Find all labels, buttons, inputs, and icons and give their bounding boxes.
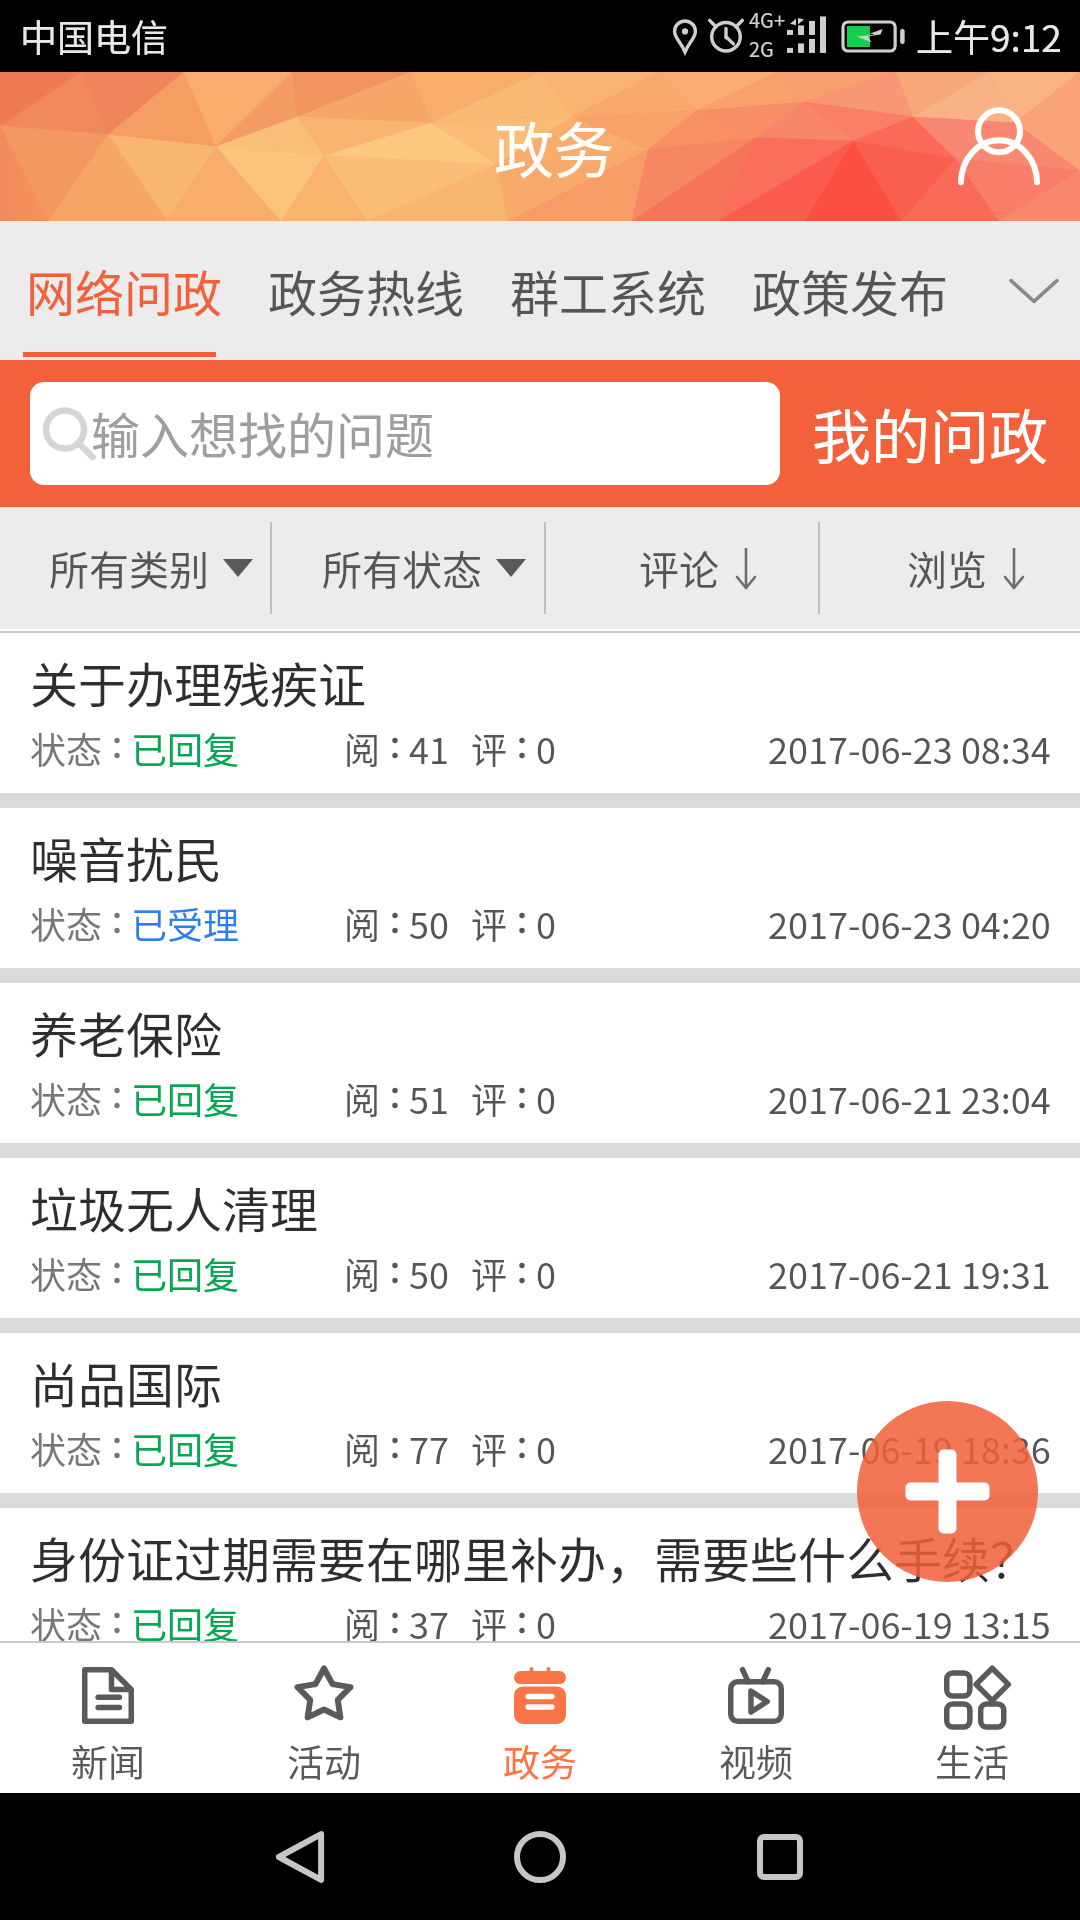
staticText: 状态 [30,1072,103,1124]
button[interactable]: 养老保险 [0,983,1080,1143]
staticText: 身份证过期需要在哪里补办，需要些什么手续？ [30,1522,1039,1592]
staticText: 2017-06-23 04:20 [768,897,1051,949]
staticText: 政策发布 [752,255,949,326]
staticText: 评 [471,1422,508,1474]
staticText: 状态 [30,1422,103,1474]
staticText: 网络问政 [26,255,223,326]
staticText: 阅 [344,1247,381,1299]
staticText: 37 [409,1597,449,1649]
staticText: 浏览 [907,539,987,597]
button[interactable]: 政务热线 [245,221,487,360]
button[interactable]: 活动 [216,1643,432,1793]
button[interactable]: 输入想找的问题 [30,382,780,485]
staticText: 生活 [935,1734,1009,1788]
staticText: 2017-06-19 18:36 [768,1422,1051,1474]
staticText: 阅 [344,1597,381,1649]
staticText: 已回复 [131,1422,240,1474]
staticText: 已回复 [131,1072,240,1124]
button[interactable]: 身份证过期需要在哪里补办，需要些什么手续？ [0,1508,1080,1641]
staticText: 垃圾无人清理 [30,1172,319,1242]
staticText: 评 [471,1597,508,1649]
button[interactable]: 尚品国际 [0,1333,1080,1493]
staticText: 2017-06-23 08:34 [768,722,1051,774]
staticText: 已回复 [131,722,240,774]
staticText: 2017-06-21 23:04 [768,1072,1051,1124]
staticText: 阅 [344,1422,381,1474]
staticText: 我的问政 [812,391,1049,476]
button[interactable]: 政务 [432,1643,648,1793]
staticText: 上午9:12 [916,9,1062,63]
button[interactable]: 所有类别 [0,507,270,629]
staticText: 评 [471,722,508,774]
staticText: 状态 [30,1597,103,1649]
staticText: 50 [409,1247,449,1299]
staticText: 已回复 [131,1597,240,1649]
button[interactable]: 所有状态 [272,507,544,629]
staticText: 0 [536,1597,556,1649]
button[interactable]: 政策发布 [729,221,971,360]
button[interactable]: 噪音扰民 [0,808,1080,968]
button[interactable]: 新建问政 [857,1401,1038,1582]
staticText: 政务 [503,1734,577,1788]
staticText: 评 [471,1247,508,1299]
staticText: 2017-06-21 19:31 [768,1247,1051,1299]
staticText: 新闻 [71,1734,145,1788]
button[interactable]: 主页 [480,1797,600,1917]
staticText: 0 [536,1247,556,1299]
button[interactable]: 网络问政 [3,221,245,360]
staticText: 养老保险 [30,997,223,1067]
staticText: 阅 [344,897,381,949]
staticText: 输入想找的问题 [91,397,435,468]
staticText: 2G [749,34,774,63]
button[interactable]: 展开更多分类 [979,221,1080,360]
staticText: 关于办理残疾证 [30,647,367,717]
staticText: 政务 [494,103,614,190]
staticText: 阅 [344,722,381,774]
staticText: 评论 [639,539,719,597]
staticText: 4G+ [749,5,785,34]
staticText: 2017-06-19 13:15 [768,1597,1051,1649]
staticText: 所有状态 [322,539,482,597]
button[interactable]: 垃圾无人清理 [0,1158,1080,1318]
button[interactable]: 视频 [648,1643,864,1793]
button[interactable]: 关于办理残疾证 [0,633,1080,793]
staticText: 中国电信 [20,9,168,63]
staticText: 已受理 [131,897,240,949]
button[interactable]: 我的问政 [780,360,1080,507]
button[interactable]: 返回 [240,1797,360,1917]
staticText: 已回复 [131,1247,240,1299]
staticText: 状态 [30,722,103,774]
button[interactable]: 群工系统 [487,221,729,360]
staticText: 尚品国际 [30,1347,223,1417]
staticText: 评 [471,897,508,949]
staticText: 状态 [30,1247,103,1299]
button[interactable]: 评论 [546,507,818,629]
staticText: 77 [409,1422,449,1474]
staticText: 0 [536,1072,556,1124]
button[interactable]: 生活 [864,1643,1080,1793]
staticText: 0 [536,722,556,774]
staticText: 群工系统 [510,255,707,326]
staticText: 0 [536,897,556,949]
staticText: 50 [409,897,449,949]
staticText: 0 [536,1422,556,1474]
button[interactable]: 浏览 [820,507,1080,629]
button[interactable]: 新闻 [0,1643,216,1793]
staticText: 噪音扰民 [30,822,223,892]
staticText: 状态 [30,897,103,949]
staticText: 评 [471,1072,508,1124]
button[interactable]: 个人中心 [944,92,1054,202]
staticText: 阅 [344,1072,381,1124]
staticText: 41 [409,722,449,774]
staticText: 51 [409,1072,449,1124]
staticText: 政务热线 [268,255,465,326]
staticText: 所有类别 [49,539,209,597]
staticText: 视频 [719,1734,793,1788]
button[interactable]: 最近任务 [720,1797,840,1917]
staticText: 活动 [287,1734,361,1788]
